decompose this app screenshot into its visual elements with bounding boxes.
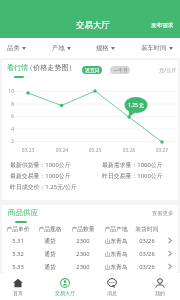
button[interactable]: 我的 — [140, 273, 180, 300]
staticText: 山东青岛 — [101, 250, 131, 257]
staticText: 产地 — [52, 44, 65, 52]
button[interactable]: 品类 — [6, 38, 27, 58]
staticText: 通货 — [35, 250, 65, 257]
staticText: 03.25 — [86, 147, 104, 154]
staticText: 03.24 — [53, 147, 71, 154]
staticText: 山东青岛 — [101, 237, 131, 244]
staticText: 最新需求量：1000公斤 — [102, 161, 163, 169]
staticText: 我的 — [155, 290, 165, 296]
staticText: 通货 — [35, 237, 65, 244]
button[interactable]: 产地 — [51, 38, 72, 58]
staticText: 装车时间 — [141, 44, 167, 52]
staticText: 03/26 — [132, 250, 162, 258]
staticText: 最新交易量：1000公斤 — [10, 172, 71, 180]
staticText: 通货 — [35, 263, 65, 270]
staticText: 看行情 — [7, 63, 29, 72]
button[interactable]: 一个月 — [110, 66, 130, 74]
staticText: 交易大厅 — [55, 290, 75, 296]
button[interactable]: 5.32 — [2, 247, 178, 260]
staticText: 山东青岛 — [101, 263, 131, 270]
staticText: 6 — [5, 113, 14, 120]
staticText: 03/26 — [132, 237, 162, 245]
staticText: 03/26 — [132, 263, 162, 271]
staticText: 产品产地 — [101, 225, 131, 232]
staticText: 产品数量 — [68, 225, 98, 232]
button[interactable]: 规格 — [95, 38, 116, 58]
staticText: 03.26 — [120, 147, 138, 154]
staticText: 2300 — [68, 263, 98, 271]
staticText: 交易大厅 — [76, 20, 110, 31]
staticText: 昨日成交价：1.25元/公斤 — [10, 183, 77, 191]
staticText: 2300 — [68, 250, 98, 258]
button[interactable]: 装车时间 — [140, 38, 174, 58]
staticText: 商品供应 — [8, 208, 38, 217]
staticText: 消息 — [107, 290, 117, 296]
staticText: 元/公斤 — [159, 66, 177, 73]
button[interactable]: 5.33 — [2, 260, 178, 273]
staticText: 一个月 — [113, 67, 128, 73]
staticText: 产品规格 — [35, 225, 65, 232]
staticText: 产品单价 — [3, 225, 33, 232]
staticText: 8 — [5, 101, 14, 108]
button[interactable]: 交易大厅 — [45, 273, 85, 300]
staticText: 首页 — [13, 290, 23, 296]
staticText: 昨日交易量：1000公斤 — [102, 172, 163, 180]
staticText: 5.31 — [3, 237, 33, 245]
staticText: 1.25 元 — [125, 102, 147, 109]
button[interactable]: 近五日 — [82, 66, 102, 74]
button[interactable]: 发布需求 — [147, 19, 178, 32]
staticText: 10 — [5, 88, 14, 95]
button[interactable]: 首页 — [0, 273, 38, 300]
staticText: 发布需求 — [151, 22, 174, 29]
staticText: 03.27 — [153, 147, 171, 154]
button[interactable]: 查看更多 — [150, 208, 176, 219]
staticText: 5.33 — [3, 263, 33, 271]
staticText: 03.23 — [19, 147, 37, 154]
staticText: 规格 — [96, 44, 109, 52]
staticText: 5.32 — [3, 250, 33, 258]
staticText: 4 — [5, 126, 14, 133]
staticText: （价格走势图） — [26, 63, 76, 72]
staticText: 装货时间 — [132, 225, 162, 232]
staticText: 品类 — [7, 44, 20, 52]
staticText: 近五日 — [85, 67, 100, 73]
staticText: 查看更多 — [152, 210, 174, 217]
staticText: 最新供货量：1000公斤 — [10, 161, 71, 169]
button[interactable]: 5.31 — [2, 234, 178, 247]
staticText: 2300 — [68, 237, 98, 245]
button[interactable]: 消息 — [92, 273, 132, 300]
staticText: 2 — [5, 138, 14, 145]
